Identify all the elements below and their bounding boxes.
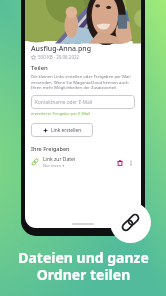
staticText: Die kleinen Links erstellen oder Freigab… bbox=[31, 74, 135, 90]
button[interactable]: Delete bbox=[115, 158, 124, 167]
button[interactable]: Link erstellen bbox=[31, 123, 93, 137]
staticText: 500 KB · 29.08.2022 bbox=[38, 54, 80, 60]
staticText: Teilen bbox=[31, 64, 48, 72]
staticText: Link zur Datei bbox=[43, 156, 76, 163]
staticText: erweiterte Freigabe per E-Mail bbox=[31, 111, 91, 117]
button[interactable]: Link zur Datei bbox=[31, 156, 135, 168]
staticText: Nur lesen ▾ bbox=[43, 163, 65, 168]
staticText: Ausflug-Anna.png bbox=[31, 44, 92, 54]
button[interactable]: Share link bbox=[110, 202, 151, 243]
staticText: Dateien und ganze Ordner teilen bbox=[18, 248, 149, 284]
button[interactable]: Kontaktname oder E-Mail bbox=[31, 95, 135, 109]
staticText: Ihre Freigaben bbox=[31, 145, 70, 152]
staticText: Link erstellen bbox=[51, 127, 82, 134]
button[interactable]: More options bbox=[126, 158, 135, 167]
staticText: Kontaktname oder E-Mail bbox=[35, 99, 93, 106]
